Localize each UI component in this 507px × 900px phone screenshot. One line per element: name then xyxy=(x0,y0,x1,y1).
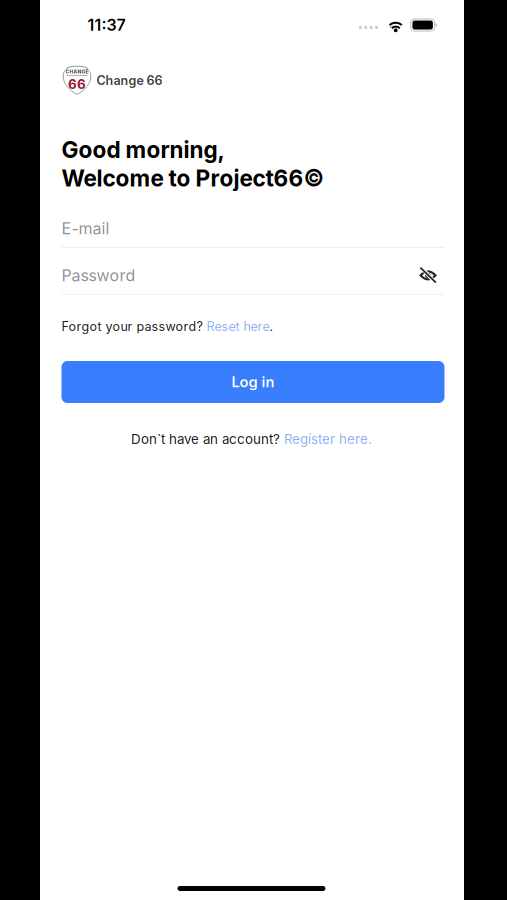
staticText: Welcome to Project66© xyxy=(61,164,324,192)
staticText: 11:37 xyxy=(87,15,125,35)
staticText: Don`t have an account? xyxy=(131,431,284,447)
button[interactable]: Reset here xyxy=(206,319,269,334)
staticText: Register here. xyxy=(284,431,372,447)
staticText: Change 66 xyxy=(96,73,162,88)
button[interactable]: Show password xyxy=(418,268,437,283)
button[interactable]: Log in xyxy=(61,361,444,403)
staticText: . xyxy=(269,319,273,334)
staticText: E-mail xyxy=(61,219,109,238)
button[interactable]: Register here. xyxy=(284,431,372,447)
staticText: CHANGE xyxy=(65,69,88,75)
staticText: Good morning, xyxy=(61,136,224,163)
staticText: Log in xyxy=(231,373,274,391)
staticText: 66 xyxy=(68,76,86,92)
staticText: Password xyxy=(61,266,135,285)
staticText: Forgot your password? xyxy=(61,319,206,334)
staticText: Reset here xyxy=(206,319,269,334)
